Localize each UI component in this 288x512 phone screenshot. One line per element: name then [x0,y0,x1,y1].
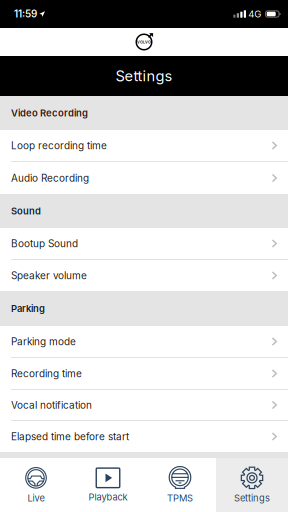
button[interactable]: TPMS [144,458,216,512]
button[interactable]: Audio Recording [0,162,288,194]
button[interactable]: Live [0,458,72,512]
staticText: Sound [11,205,41,217]
staticText: VOLVO [137,40,151,44]
staticText: Audio Recording [11,172,89,184]
button[interactable]: Playback [72,458,144,512]
staticText: Recording time [11,367,82,380]
staticText: Settings [115,67,172,85]
staticText: TPMS [167,492,193,504]
staticText: Playback [88,491,127,503]
staticText: 11:59 [14,8,37,20]
staticText: Loop recording time [11,139,107,152]
staticText: 4G [248,8,261,20]
button[interactable]: Vocal notification [0,390,288,421]
staticText: Video Recording [11,107,88,119]
staticText: Live [27,492,44,504]
staticText: Settings [234,492,270,504]
staticText: Parking mode [11,335,76,348]
staticText: Speaker volume [11,269,87,282]
staticText: Elapsed time before start [11,430,129,443]
button[interactable]: Settings [216,458,288,512]
button[interactable]: Speaker volume [0,260,288,291]
button[interactable]: Parking mode [0,326,288,358]
staticText: Parking [11,303,45,314]
button[interactable]: Recording time [0,358,288,390]
button[interactable]: Elapsed time before start [0,421,288,452]
button[interactable]: Loop recording time [0,130,288,162]
staticText: Bootup Sound [11,237,78,250]
button[interactable]: Bootup Sound [0,228,288,260]
staticText: Vocal notification [11,399,92,411]
